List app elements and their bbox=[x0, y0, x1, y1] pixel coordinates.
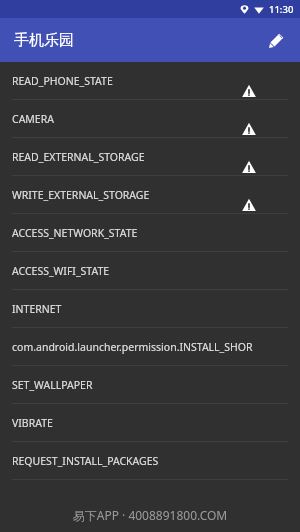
button[interactable]: ACCESS_NETWORK_STATE bbox=[0, 214, 300, 251]
button[interactable]: VIBRATE bbox=[0, 404, 300, 441]
staticText: READ_EXTERNAL_STORAGE bbox=[12, 150, 145, 164]
button[interactable]: READ_PHONE_STATE bbox=[0, 62, 300, 99]
staticText: ACCESS_WIFI_STATE bbox=[12, 264, 110, 278]
button[interactable]: REQUEST_INSTALL_PACKAGES bbox=[0, 442, 300, 479]
staticText: CAMERA bbox=[12, 112, 54, 126]
staticText: REQUEST_INSTALL_PACKAGES bbox=[12, 454, 159, 468]
other: Wi-Fi bbox=[254, 6, 264, 14]
staticText: com.android.launcher.permission.INSTALL_… bbox=[12, 340, 254, 354]
staticText: ACCESS_NETWORK_STATE bbox=[12, 226, 138, 240]
other: Dangerous permission warning bbox=[242, 122, 256, 136]
button[interactable]: ACCESS_WIFI_STATE bbox=[0, 252, 300, 289]
other: Dangerous permission warning bbox=[242, 198, 256, 212]
staticText: 易下APP · 4008891800.COM bbox=[0, 507, 300, 523]
other: Dangerous permission warning bbox=[242, 160, 256, 174]
staticText: SET_WALLPAPER bbox=[12, 378, 93, 392]
button[interactable]: com.android.launcher.permission.INSTALL_… bbox=[0, 328, 300, 365]
staticText: 手机乐园 bbox=[14, 31, 74, 50]
button[interactable]: WRITE_EXTERNAL_STORAGE bbox=[0, 176, 300, 213]
other: Dangerous permission warning bbox=[242, 84, 256, 98]
other: Location bbox=[240, 5, 249, 14]
button[interactable]: CAMERA bbox=[0, 100, 300, 137]
button[interactable]: INTERNET bbox=[0, 290, 300, 327]
staticText: INTERNET bbox=[12, 302, 62, 316]
button[interactable]: Edit bbox=[260, 24, 292, 56]
staticText: WRITE_EXTERNAL_STORAGE bbox=[12, 188, 150, 202]
staticText: 11:30 bbox=[269, 3, 294, 16]
button[interactable]: SET_WALLPAPER bbox=[0, 366, 300, 403]
button[interactable]: READ_EXTERNAL_STORAGE bbox=[0, 138, 300, 175]
staticText: VIBRATE bbox=[12, 416, 53, 430]
staticText: READ_PHONE_STATE bbox=[12, 74, 113, 88]
